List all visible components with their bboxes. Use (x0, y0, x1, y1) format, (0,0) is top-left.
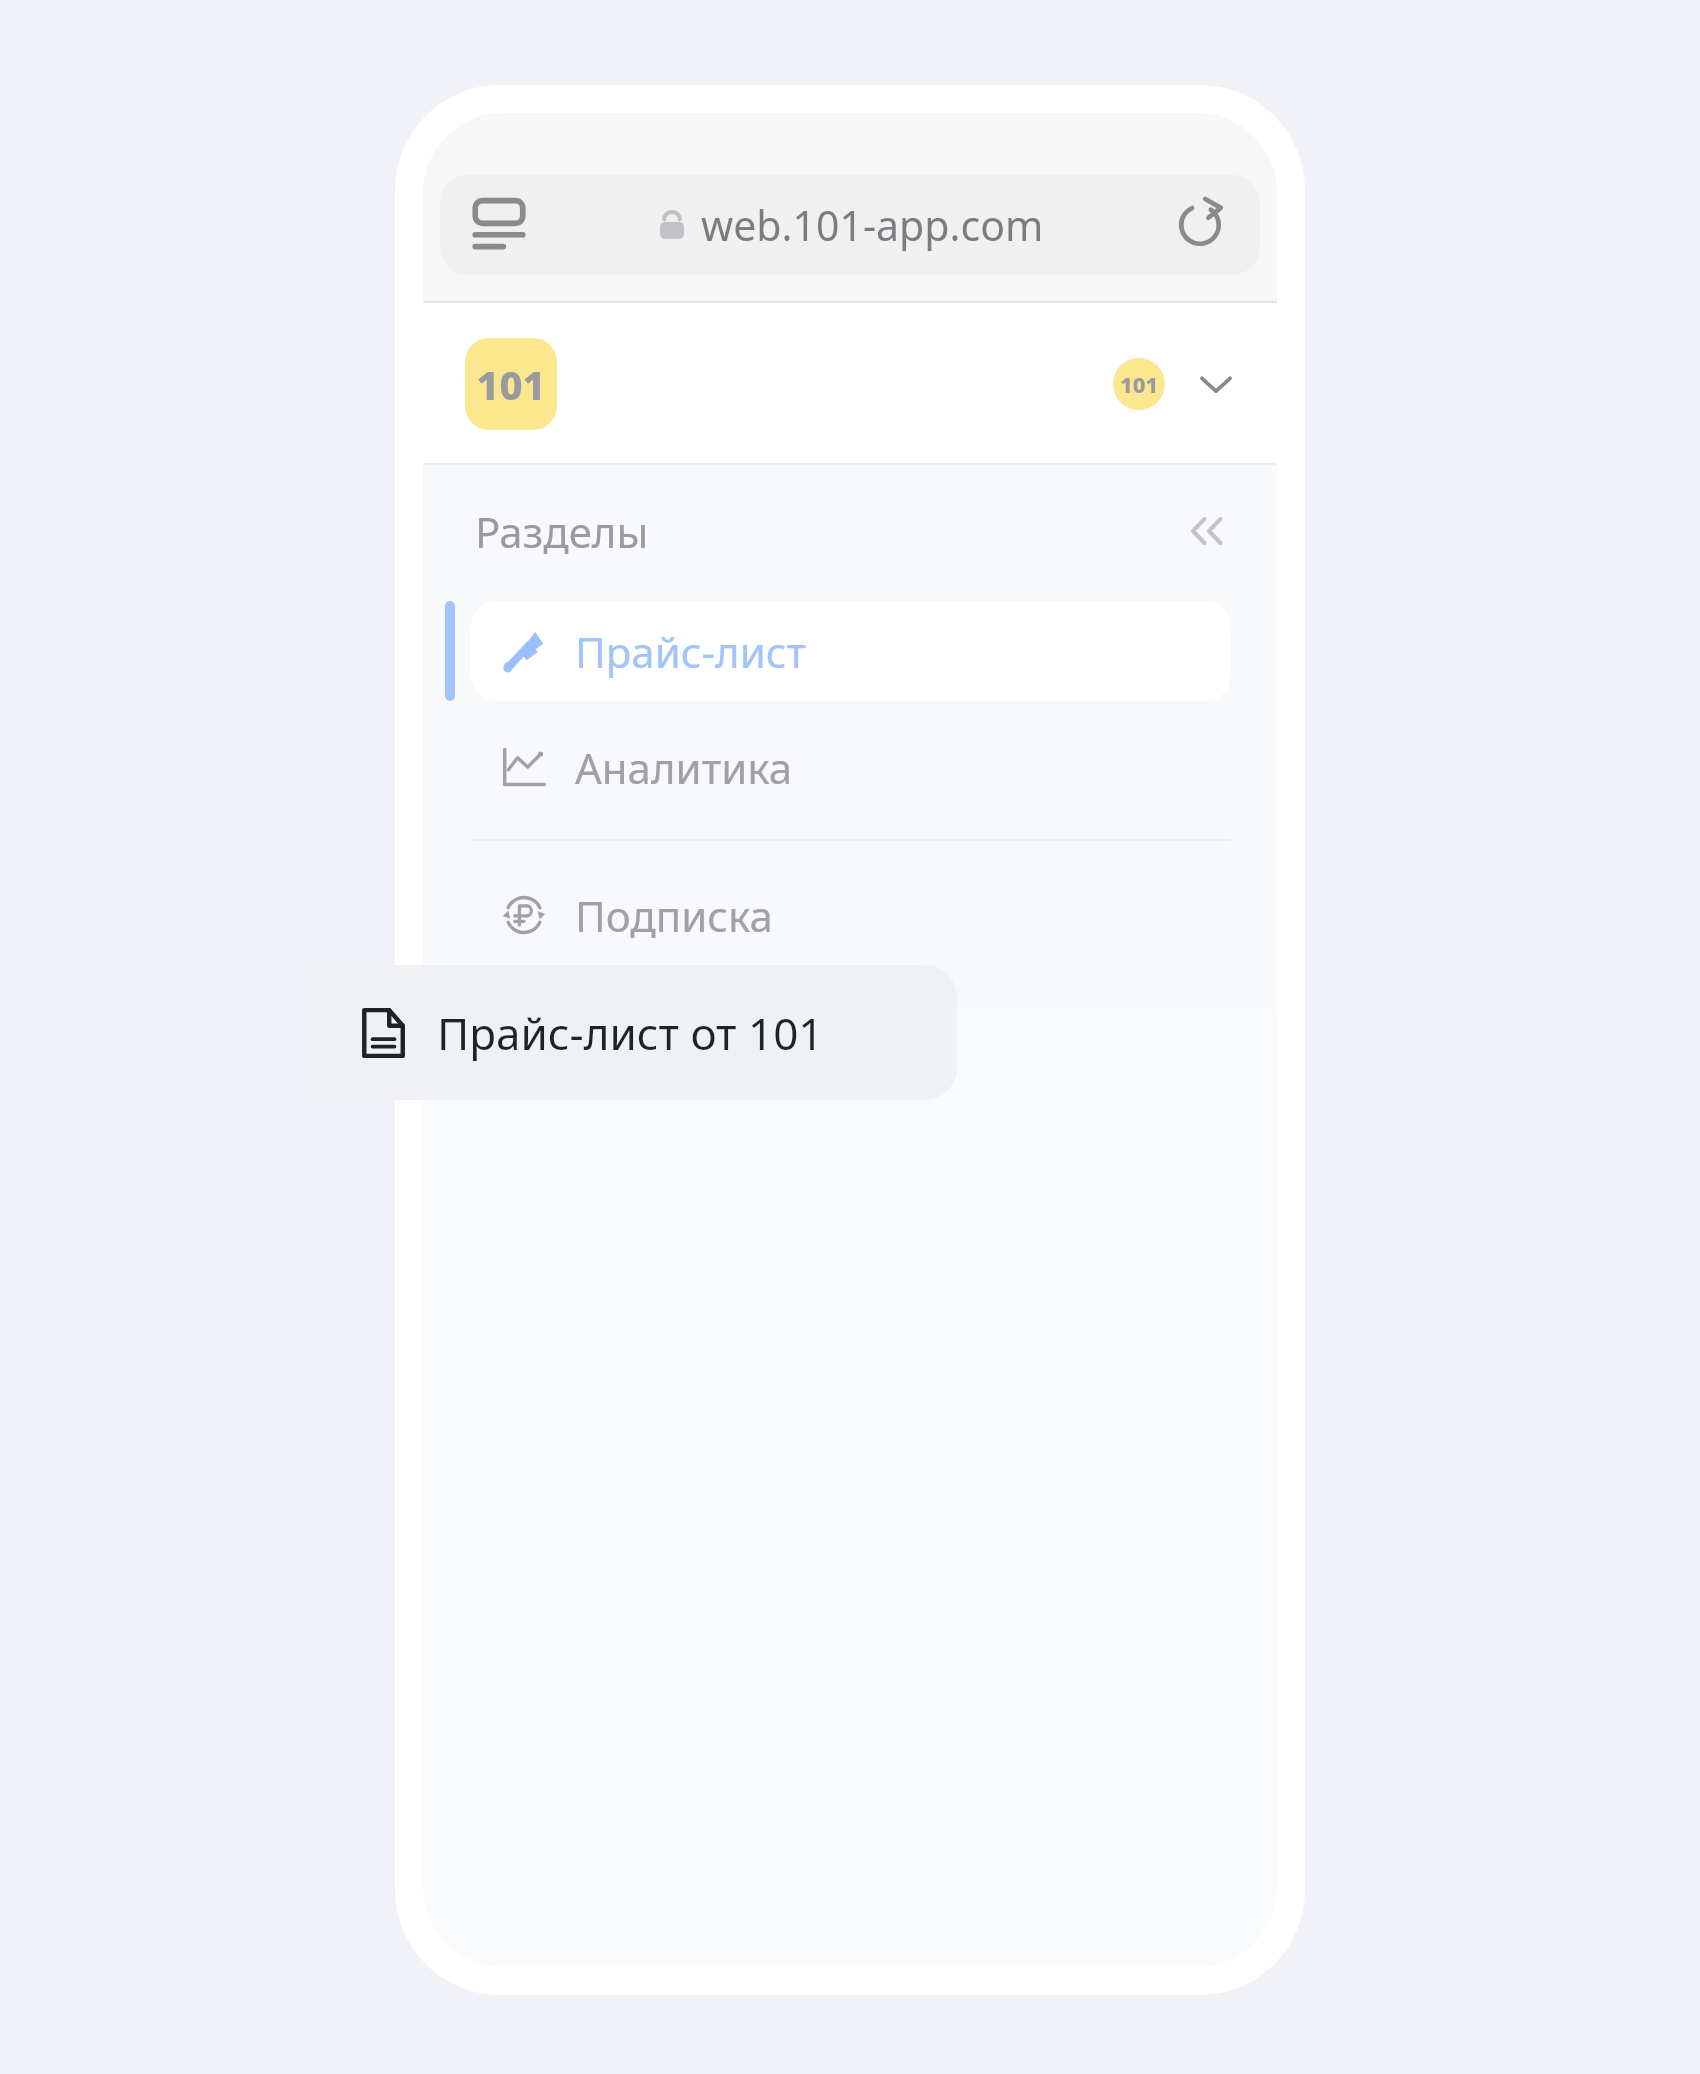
button[interactable]: Page settings (440, 175, 1260, 275)
staticText: Подписка (575, 887, 773, 944)
staticText: Разделы (475, 503, 649, 560)
button[interactable]: Аналитика (471, 717, 1231, 817)
staticText: Аналитика (575, 739, 793, 796)
button[interactable]: Подписка (471, 865, 1231, 965)
button[interactable]: Прайс-лист (471, 601, 1231, 701)
staticText: 101 (1120, 369, 1159, 399)
staticText: web.101-app.com (701, 197, 1044, 253)
button[interactable]: Page settings (472, 198, 526, 252)
staticText: Прайс-лист (575, 623, 806, 680)
staticText: Прайс-лист от 101 (437, 1003, 824, 1063)
button[interactable]: Прайс-лист от 101 (302, 965, 957, 1100)
button[interactable]: 101 (465, 338, 557, 430)
button[interactable]: Reload (1174, 199, 1226, 251)
staticText: 101 (476, 357, 546, 411)
button[interactable]: Collapse sidebar (1173, 501, 1233, 561)
button[interactable]: 101 (1113, 358, 1239, 410)
other: Expand account menu (1193, 361, 1239, 407)
